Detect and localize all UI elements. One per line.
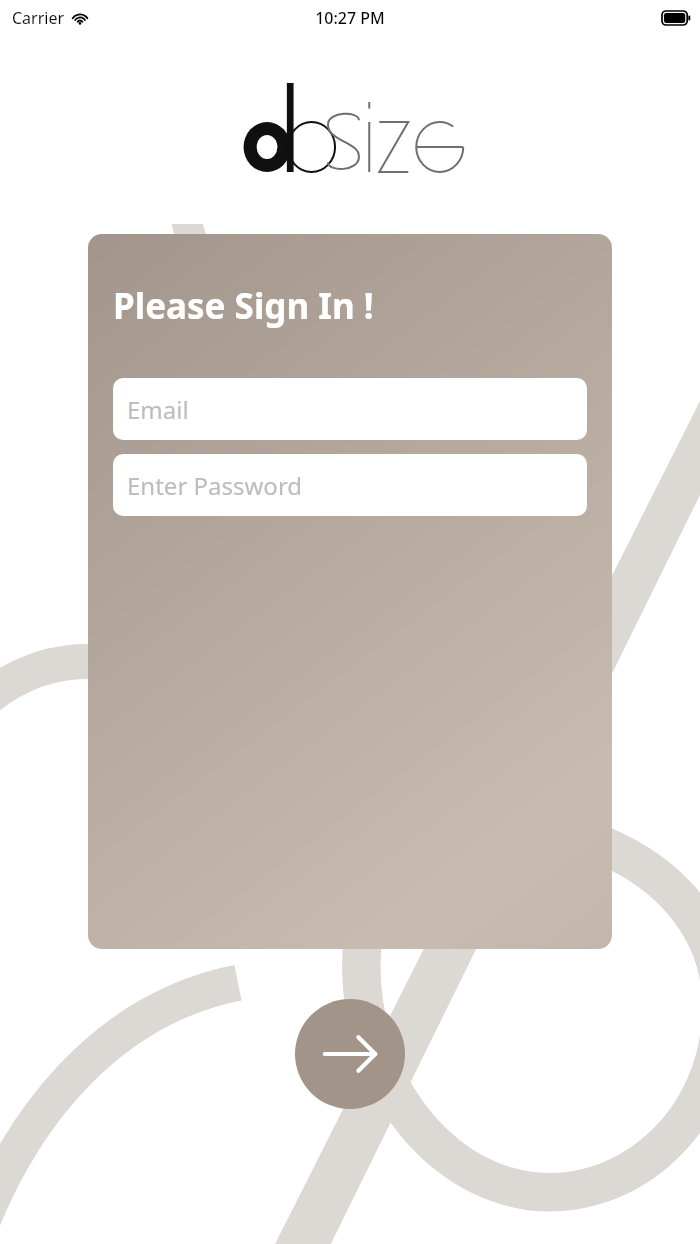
staticText: Enter Password xyxy=(127,469,303,502)
staticText: Please Sign In ! xyxy=(113,282,374,330)
staticText: Email xyxy=(127,393,189,426)
staticText: 10:27 PM xyxy=(315,7,385,29)
button[interactable]: Enter Password xyxy=(113,454,587,516)
button[interactable]: Email xyxy=(113,378,587,440)
button[interactable]: Sign in xyxy=(295,999,405,1109)
staticText: Carrier xyxy=(12,7,65,29)
